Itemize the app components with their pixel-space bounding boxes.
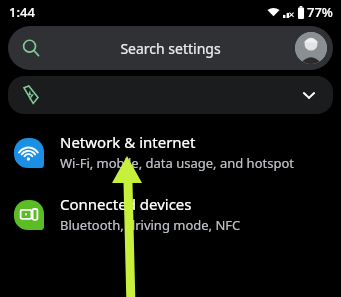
button[interactable]: Search: [8, 26, 333, 70]
button[interactable]: Network & internet: [0, 126, 341, 178]
other: Battery saver: [20, 85, 40, 105]
button[interactable]: Connected devices: [0, 188, 341, 240]
staticText: 1:44: [9, 3, 35, 21]
other: Expand: [301, 87, 317, 103]
button[interactable]: Account: [295, 32, 327, 64]
staticText: Wi-Fi, mobile, data usage, and hotspot: [60, 154, 294, 172]
button[interactable]: Battery saver: [8, 76, 333, 114]
other: Search: [22, 39, 40, 57]
staticText: Connected devices: [60, 194, 192, 214]
staticText: 77%: [307, 3, 333, 21]
staticText: Search settings: [120, 39, 221, 58]
staticText: Network & internet: [60, 132, 196, 152]
staticText: Bluetooth, driving mode, NFC: [60, 216, 241, 234]
